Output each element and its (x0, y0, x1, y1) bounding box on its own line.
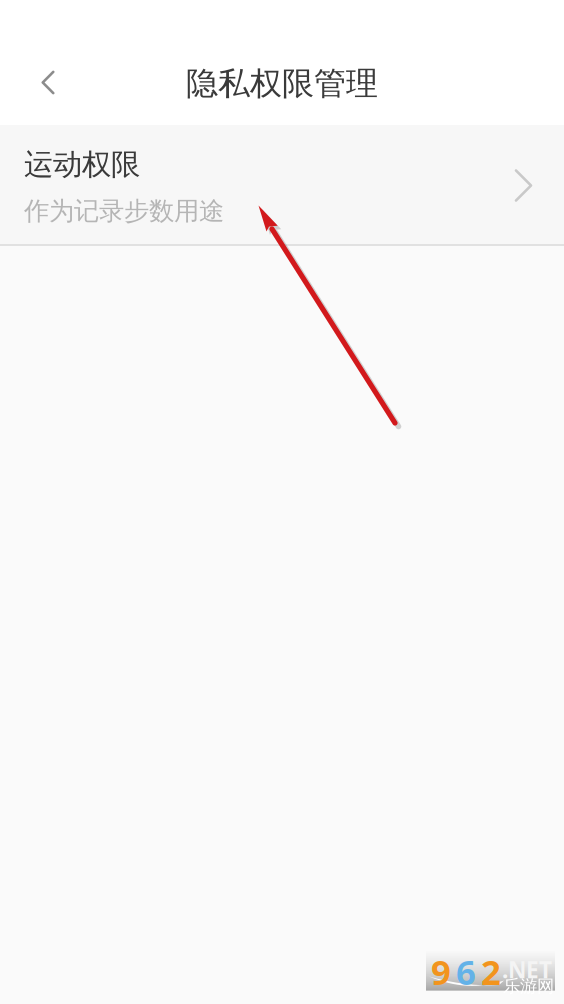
staticText: 2 (481, 948, 501, 994)
staticText: 乐游网 (503, 975, 554, 997)
staticText: 隐私权限管理 (186, 64, 378, 103)
button[interactable]: Back (0, 31, 62, 93)
staticText: 6 (456, 948, 476, 994)
staticText: 运动权限 (24, 146, 140, 182)
staticText: .NET (502, 954, 552, 985)
staticText: 9 (431, 948, 451, 994)
staticText: 作为记录步数用途 (24, 195, 224, 227)
button[interactable]: 运动权限 (0, 125, 564, 244)
